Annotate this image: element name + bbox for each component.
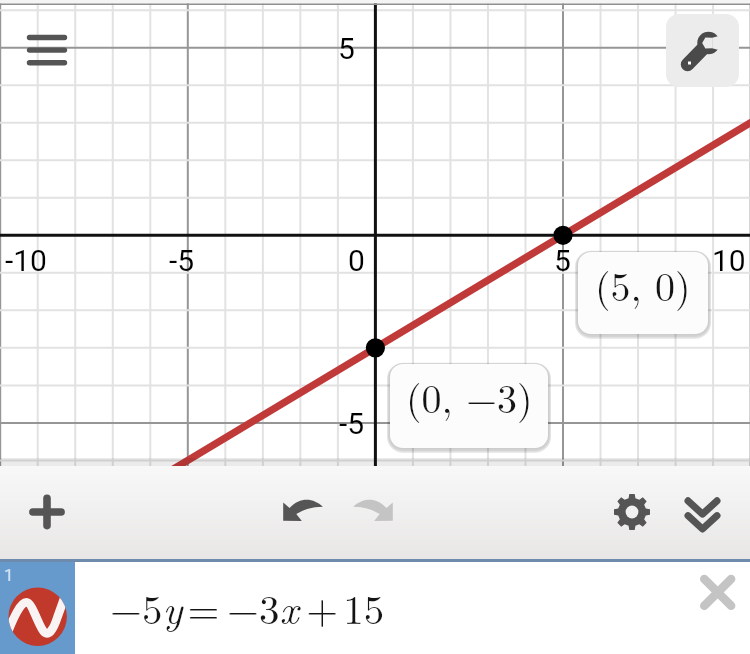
button[interactable]: Undo (272, 481, 330, 539)
staticText: 10 (712, 243, 746, 278)
staticText: ‐5 (339, 406, 365, 441)
button[interactable]: Delete expression (686, 562, 748, 624)
button[interactable]: Tools (666, 14, 739, 87)
button[interactable]: Redo (346, 481, 404, 539)
staticText: 0 (348, 243, 365, 278)
button[interactable]: Settings (603, 483, 661, 541)
staticText: 1 (4, 565, 14, 585)
staticText: −5y = −3x + 15 (110, 578, 385, 636)
staticText: (0, −3) (406, 368, 533, 425)
button[interactable]: Collapse (674, 486, 732, 544)
button[interactable]: Add expression (18, 483, 76, 541)
staticText: 5 (554, 243, 571, 278)
staticText: ‐10 (5, 243, 47, 278)
staticText: ‐5 (169, 243, 195, 278)
staticText: (5, 0) (595, 256, 691, 313)
staticText: 5 (338, 31, 355, 66)
button[interactable]: 1 (0, 562, 750, 654)
button[interactable]: Menu (22, 26, 72, 76)
